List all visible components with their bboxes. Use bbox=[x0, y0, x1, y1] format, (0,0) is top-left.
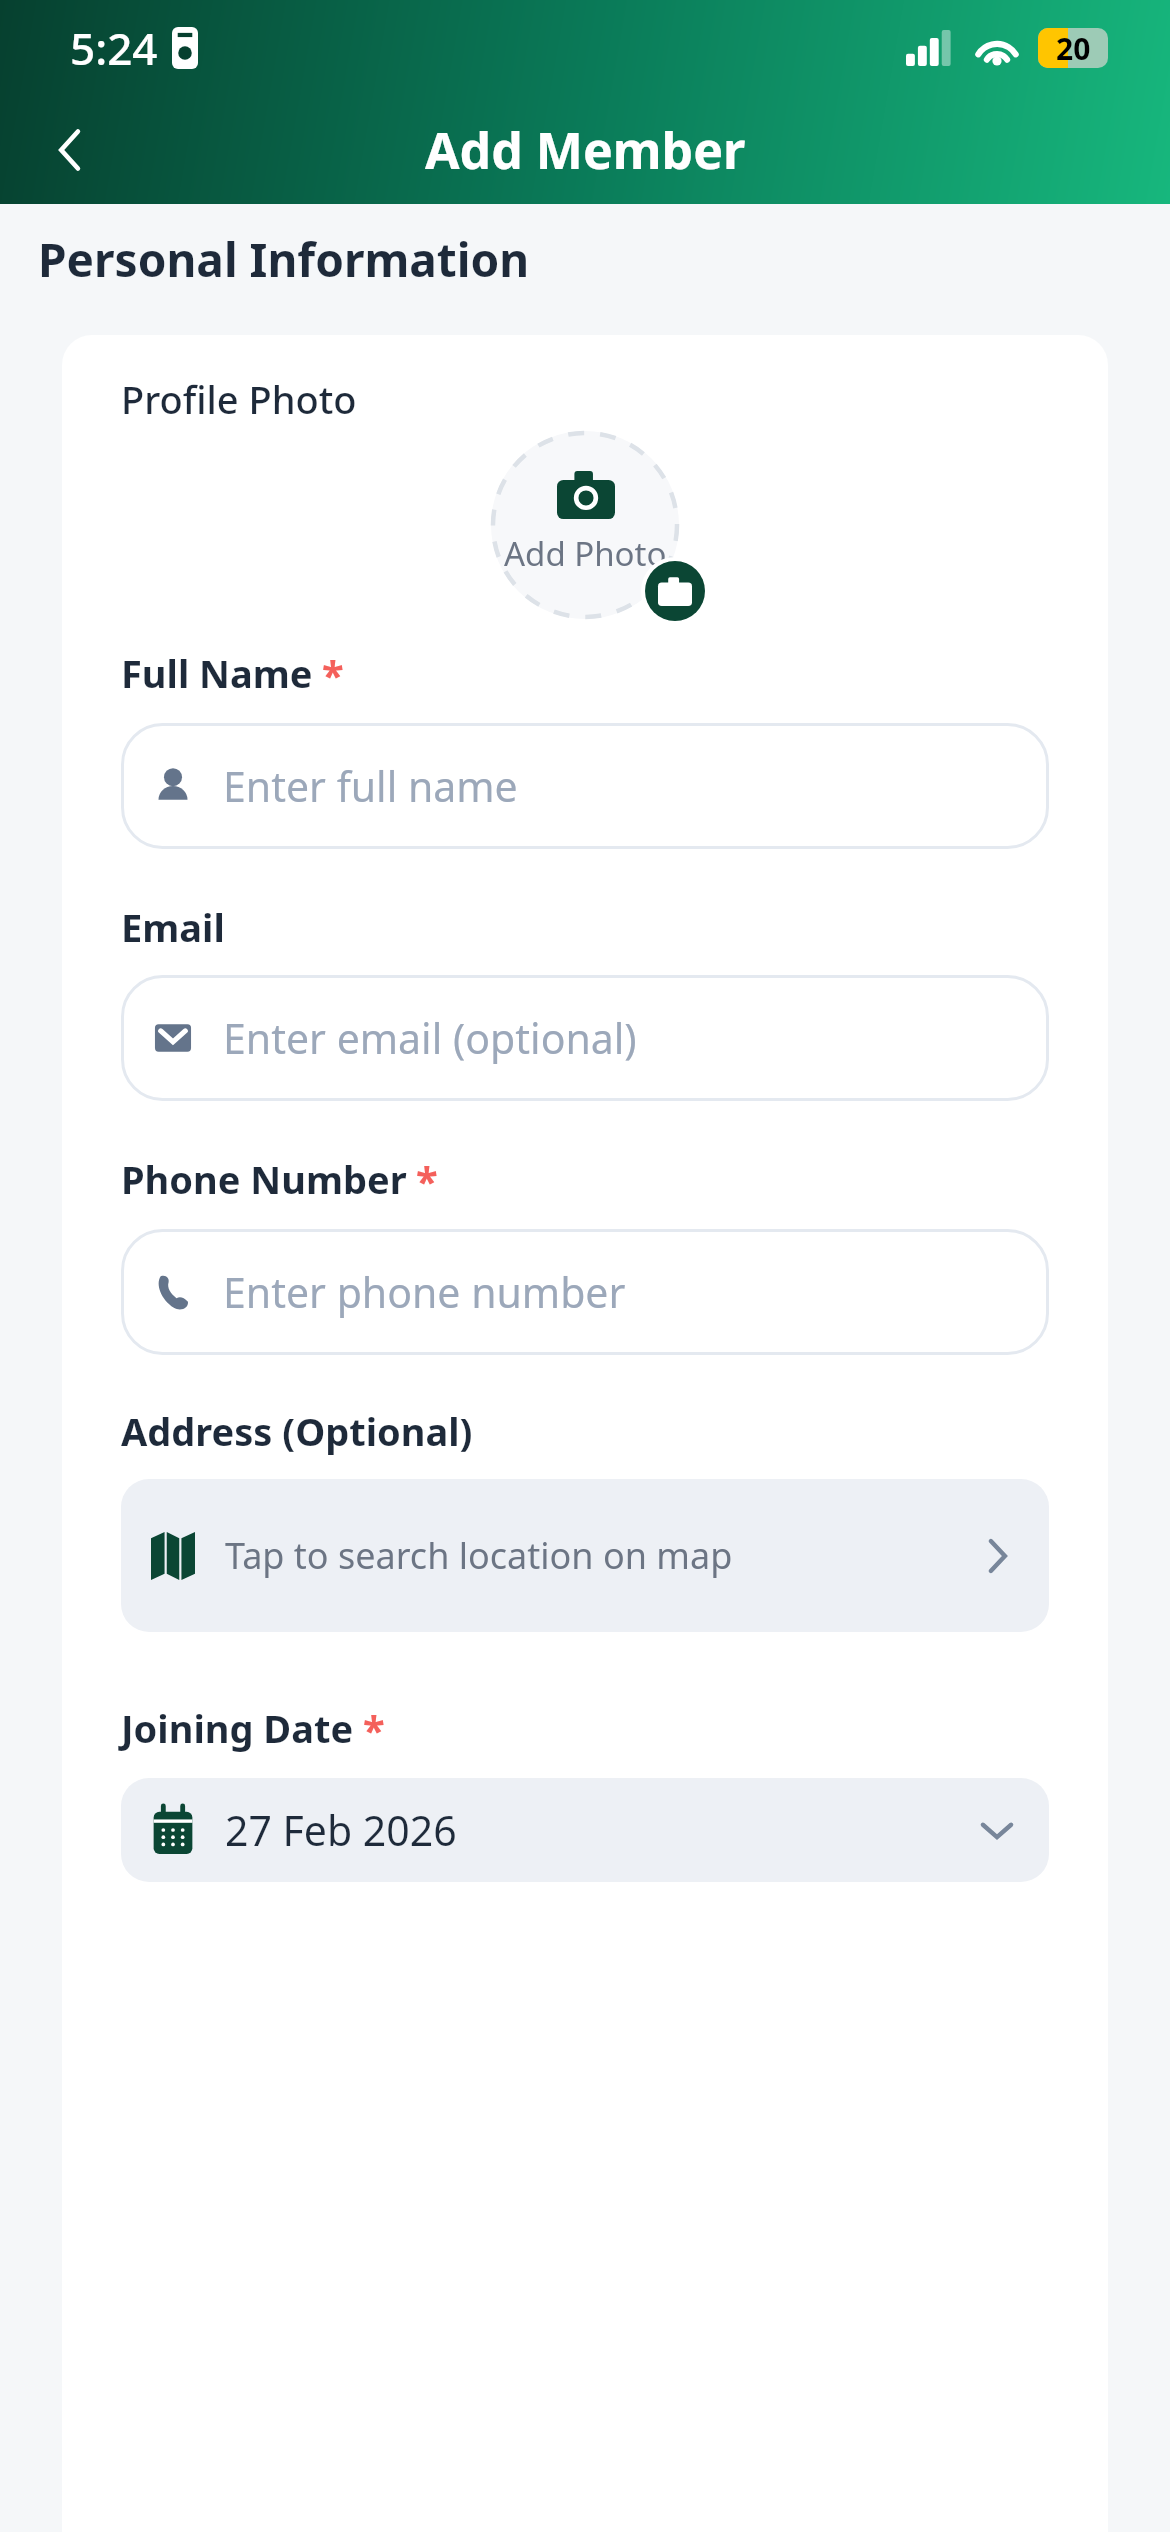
staticText: Tap to search location on map bbox=[225, 1531, 975, 1580]
staticText: Enter email (optional) bbox=[223, 1010, 637, 1066]
staticText: * bbox=[322, 647, 344, 701]
button[interactable]: 27 Feb 2026 bbox=[121, 1778, 1049, 1882]
staticText: Add Photo bbox=[504, 531, 667, 576]
staticText: Full Name bbox=[121, 647, 313, 699]
button[interactable]: Change photo bbox=[645, 561, 705, 621]
staticText: Add Member bbox=[425, 116, 746, 184]
staticText: Enter phone number bbox=[223, 1264, 626, 1320]
staticText: 20 bbox=[1056, 28, 1091, 68]
staticText: 27 Feb 2026 bbox=[225, 1802, 975, 1858]
button[interactable]: Enter email (optional) bbox=[121, 975, 1049, 1101]
staticText: * bbox=[416, 1153, 438, 1207]
button[interactable]: Tap to search location on map bbox=[121, 1479, 1049, 1632]
button[interactable]: Enter phone number bbox=[121, 1229, 1049, 1355]
staticText: Phone Number bbox=[121, 1153, 407, 1205]
staticText: Address (Optional) bbox=[121, 1405, 473, 1457]
staticText: Enter full name bbox=[223, 758, 518, 814]
staticText: Personal Information bbox=[38, 228, 530, 291]
staticText: 5:24 bbox=[70, 18, 158, 78]
button[interactable]: Add Photo bbox=[491, 431, 679, 619]
staticText: Joining Date bbox=[121, 1702, 354, 1754]
button[interactable]: Enter full name bbox=[121, 723, 1049, 849]
button[interactable]: Back bbox=[26, 106, 114, 194]
staticText: Email bbox=[121, 901, 225, 953]
staticText: * bbox=[363, 1702, 385, 1756]
staticText: Profile Photo bbox=[121, 373, 357, 425]
